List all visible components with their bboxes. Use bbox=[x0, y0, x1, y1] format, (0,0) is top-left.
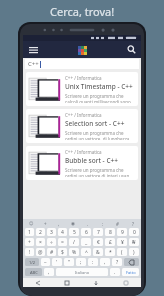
button[interactable]: 8 bbox=[105, 228, 115, 236]
button[interactable]: £ bbox=[105, 238, 115, 246]
staticText: 4 bbox=[61, 229, 64, 236]
button[interactable]: # bbox=[110, 220, 125, 227]
button[interactable]: C++ / Informatica bbox=[26, 72, 138, 106]
button[interactable]: ? bbox=[125, 220, 140, 227]
staticText: @ bbox=[38, 249, 43, 256]
button[interactable]: 6 bbox=[81, 228, 91, 236]
staticText: . bbox=[87, 221, 89, 227]
button[interactable]: 4 bbox=[58, 228, 67, 236]
button[interactable]: % bbox=[69, 248, 79, 256]
staticText: = bbox=[61, 239, 64, 246]
button[interactable]: : bbox=[88, 258, 98, 266]
button[interactable]: Logo bbox=[75, 43, 89, 57]
staticText: Cerca, trova! bbox=[50, 4, 115, 19]
staticText: ◉ bbox=[71, 221, 75, 226]
button[interactable]: & bbox=[93, 248, 103, 256]
button[interactable]: 0 bbox=[129, 228, 139, 236]
button[interactable]: / bbox=[69, 238, 79, 246]
staticText: Scrivere un programma che ordini un vett… bbox=[65, 130, 135, 140]
button[interactable]: C++ bbox=[25, 59, 139, 69]
button[interactable]: ; bbox=[76, 258, 86, 266]
staticText: Bubble sort - C++ bbox=[65, 156, 118, 165]
button[interactable]: ' bbox=[52, 258, 62, 266]
staticText: 1 bbox=[28, 229, 31, 236]
button[interactable]: − bbox=[41, 258, 50, 266]
staticText: Selection sort - C++ bbox=[65, 119, 125, 128]
button[interactable]: . bbox=[110, 268, 120, 276]
button[interactable]: = bbox=[58, 238, 67, 246]
button[interactable]: + bbox=[38, 220, 52, 227]
staticText: 1/2 bbox=[29, 260, 36, 265]
button[interactable]: 1 bbox=[25, 228, 34, 236]
button[interactable]: $ bbox=[58, 248, 67, 256]
button[interactable]: 3 bbox=[47, 228, 56, 236]
button[interactable]: 5 bbox=[69, 228, 79, 236]
button[interactable]: , bbox=[44, 268, 54, 276]
staticText: ( bbox=[121, 249, 123, 256]
button[interactable]: Italiano bbox=[56, 268, 108, 276]
staticText: 9 bbox=[121, 229, 124, 236]
staticText: 8 bbox=[109, 229, 112, 236]
staticText: Scrivere un programma che ordini un vett… bbox=[65, 167, 135, 177]
staticText: * bbox=[109, 249, 112, 256]
button[interactable]: × bbox=[36, 238, 45, 246]
staticText: 5 bbox=[73, 229, 76, 236]
button[interactable]: . bbox=[80, 220, 95, 227]
button[interactable]: 9 bbox=[117, 228, 127, 236]
button[interactable]: @ bbox=[36, 248, 45, 256]
staticText: : bbox=[92, 259, 94, 266]
staticText: ₩ bbox=[132, 239, 136, 246]
staticText: Fatto bbox=[126, 270, 136, 275]
button[interactable]: € bbox=[93, 238, 103, 246]
staticText: ? bbox=[116, 259, 119, 266]
button[interactable]: 1/2 bbox=[25, 258, 39, 266]
staticText: € bbox=[97, 239, 100, 246]
staticText: C++ bbox=[28, 60, 39, 68]
button[interactable]: 2 bbox=[36, 228, 45, 236]
button[interactable]: ₩ bbox=[129, 238, 139, 246]
button[interactable]: ¥ bbox=[117, 238, 127, 246]
button[interactable]: 7 bbox=[93, 228, 103, 236]
button[interactable]: ( bbox=[117, 248, 127, 256]
button[interactable]: Recents bbox=[23, 278, 52, 287]
button[interactable]: ÷ bbox=[47, 238, 56, 246]
button[interactable]: Menu bbox=[23, 41, 43, 58]
staticText: Unix Timestamp - C++ bbox=[65, 82, 133, 91]
staticText: C++ / Informatica bbox=[65, 75, 102, 81]
staticText: . bbox=[114, 269, 116, 276]
button[interactable]: : bbox=[95, 220, 110, 227]
button[interactable]: Hide keyboard bbox=[81, 278, 111, 287]
button[interactable]: " bbox=[64, 258, 74, 266]
button[interactable]: _ bbox=[81, 238, 91, 246]
button[interactable]: Keyboard layout bbox=[111, 278, 141, 287]
button[interactable]: + bbox=[25, 238, 34, 246]
button[interactable]: Backspace bbox=[124, 258, 139, 266]
staticText: ? bbox=[132, 221, 134, 227]
button[interactable]: Fatto bbox=[122, 268, 139, 276]
staticText: Italiano bbox=[75, 270, 90, 275]
button[interactable]: C++ / Informatica bbox=[26, 146, 138, 180]
button[interactable]: ◉ bbox=[66, 220, 80, 227]
button[interactable]: ! bbox=[25, 248, 34, 256]
staticText: 2 bbox=[39, 229, 42, 236]
button[interactable]: , bbox=[100, 258, 110, 266]
button[interactable]: ) bbox=[129, 248, 139, 256]
button[interactable]: ? bbox=[112, 258, 122, 266]
staticText: Scrivere un programma che calcoli quanti… bbox=[65, 93, 135, 103]
button[interactable]: ☺ bbox=[24, 220, 38, 227]
button[interactable]: # bbox=[47, 248, 56, 256]
staticText: ! bbox=[29, 249, 31, 256]
button[interactable]: Search bbox=[121, 41, 141, 58]
button[interactable]: ABC bbox=[25, 268, 42, 276]
staticText: $ bbox=[61, 249, 64, 256]
staticText: C++ / Informatica bbox=[65, 149, 102, 155]
button[interactable]: C++ / Informatica bbox=[26, 109, 138, 143]
staticText: # bbox=[50, 249, 54, 256]
button[interactable]: ^ bbox=[81, 248, 91, 256]
button[interactable]: Home bbox=[52, 278, 81, 287]
staticText: × bbox=[39, 239, 42, 246]
staticText: − bbox=[44, 259, 47, 266]
button[interactable]: , bbox=[52, 220, 66, 227]
staticText: " bbox=[68, 259, 71, 266]
button[interactable]: * bbox=[105, 248, 115, 256]
